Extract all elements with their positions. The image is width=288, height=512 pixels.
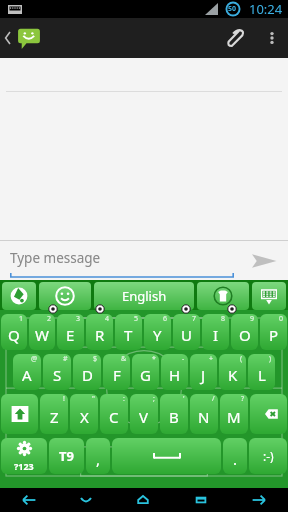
staticText: ? [241,394,245,404]
button[interactable]: Shift [1,394,38,434]
staticText: . [233,449,238,469]
button[interactable]: . [223,438,247,474]
staticText: , [96,449,101,469]
staticText: O [239,325,251,345]
staticText: 6 [163,314,168,324]
button[interactable]: Back [0,488,57,512]
button[interactable]: R [86,314,113,350]
button[interactable]: , [86,438,110,474]
staticText: W [35,325,49,345]
staticText: F [113,365,121,385]
button[interactable]: Backspace [250,394,287,434]
staticText: Type message [10,249,101,267]
button[interactable]: G [132,354,159,390]
staticText: 1 [19,314,24,324]
staticText: N [198,407,210,427]
button[interactable]: K [219,354,246,390]
button[interactable]: Up, Messaging [0,18,48,58]
button[interactable]: Home [114,488,172,512]
staticText: B [169,407,179,427]
button[interactable]: X [70,394,98,434]
staticText: :-) [263,448,274,464]
button[interactable]: Symbols and settings [1,438,47,474]
staticText: X [80,407,89,427]
button[interactable]: Recent apps [172,488,230,512]
button[interactable]: Hide keyboard [252,282,286,310]
staticText: C [109,407,119,427]
button[interactable]: :-) [249,438,287,474]
button[interactable]: Y [144,314,171,350]
staticText: 9 [250,314,255,324]
button[interactable]: A [13,354,41,390]
staticText: 8 [221,314,226,324]
staticText: ! [63,394,65,404]
staticText: 3 [76,314,81,324]
staticText: 50 [228,4,237,14]
button[interactable]: Theme [197,282,249,310]
staticText: @ [31,354,38,364]
button[interactable]: More options [256,18,288,58]
staticText: 0 [279,314,284,324]
button[interactable]: Q [1,314,27,350]
button[interactable]: D [73,354,101,390]
staticText: J [201,365,206,385]
button[interactable]: I [202,314,229,350]
button[interactable]: F [103,354,130,390]
button[interactable]: W [29,314,55,350]
staticText: H [169,365,181,385]
staticText: A [22,365,32,385]
button[interactable]: Hide keyboard [57,488,114,512]
button[interactable]: Attach [212,18,256,58]
button[interactable]: Type message [10,242,234,280]
staticText: E [66,325,75,345]
staticText: Z [50,407,59,427]
button[interactable]: Z [40,394,68,434]
staticText: - [182,354,185,364]
button[interactable]: Emoji [39,282,91,310]
staticText: I [213,325,219,345]
staticText: 7 [192,314,197,324]
button[interactable]: O [231,314,258,350]
staticText: & [121,354,127,364]
staticText: Q [8,325,20,345]
button[interactable]: J [190,354,217,390]
staticText: 2 [47,314,52,324]
staticText: L [258,365,266,385]
staticText: D [82,365,93,385]
staticText: G [140,365,151,385]
button[interactable]: T9 [49,438,84,474]
staticText: P [269,325,279,345]
button[interactable]: U [173,314,200,350]
button[interactable]: E [57,314,84,350]
button[interactable]: M [220,394,248,434]
button[interactable]: N [190,394,218,434]
button[interactable]: Forward [230,488,288,512]
button[interactable]: P [260,314,287,350]
staticText: ( [240,354,243,364]
staticText: ; [153,394,155,404]
button[interactable]: V [130,394,158,434]
button[interactable]: T [115,314,142,350]
button[interactable]: Send [240,242,288,280]
staticText: * [152,354,156,364]
staticText: " [92,394,95,404]
staticText: 5 [134,314,139,324]
staticText: ) [269,354,272,364]
staticText: / [212,394,215,404]
staticText: ' [183,394,185,404]
staticText: M [227,407,241,427]
button[interactable]: C [100,394,128,434]
staticText: T [124,325,133,345]
button[interactable]: L [248,354,275,390]
staticText: T9 [59,447,74,465]
button[interactable]: H [161,354,188,390]
button[interactable]: English [94,282,194,310]
button[interactable]: Space [112,438,221,474]
staticText: : [123,394,125,404]
staticText: K [228,365,238,385]
button[interactable]: S [43,354,71,390]
button[interactable]: B [160,394,188,434]
button[interactable]: Language globe [2,282,36,310]
staticText: Y [153,325,162,345]
staticText: 4 [105,314,110,324]
